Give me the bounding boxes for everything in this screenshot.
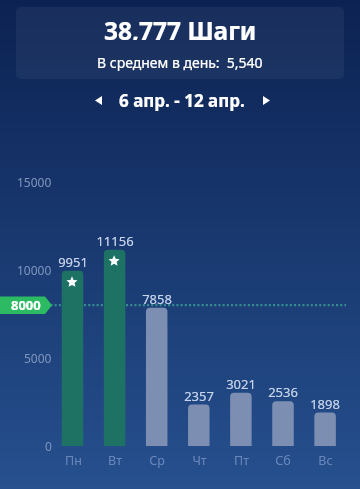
staticText: 3021 [226, 375, 256, 391]
staticText: 2536 [268, 383, 298, 399]
staticText: 1898 [310, 395, 340, 411]
staticText: 0 [45, 438, 52, 454]
button[interactable]: Next week [254, 88, 278, 112]
staticText: 10000 [17, 262, 52, 278]
staticText: Вт [108, 452, 122, 468]
staticText: 5000 [24, 350, 52, 366]
button[interactable]: Previous week [86, 88, 110, 112]
staticText: Пн [65, 452, 82, 468]
staticText: В среднем в день: 5,540 [97, 53, 263, 71]
staticText: 9951 [58, 253, 88, 269]
staticText: Ср [149, 452, 165, 468]
staticText: Сб [275, 452, 291, 468]
staticText: 8000 [11, 296, 41, 314]
staticText: Пт [234, 452, 249, 468]
staticText: 7858 [142, 290, 172, 306]
staticText: 6 апр. - 12 апр. [119, 89, 245, 112]
staticText: 11156 [96, 232, 134, 248]
staticText: Чт [192, 452, 207, 468]
staticText: 38,777 Шаги [104, 14, 257, 40]
staticText: 2357 [184, 387, 214, 403]
staticText: Вс [318, 452, 333, 468]
staticText: 15000 [17, 174, 52, 190]
button[interactable]: 38,777 Шаги [16, 7, 344, 79]
